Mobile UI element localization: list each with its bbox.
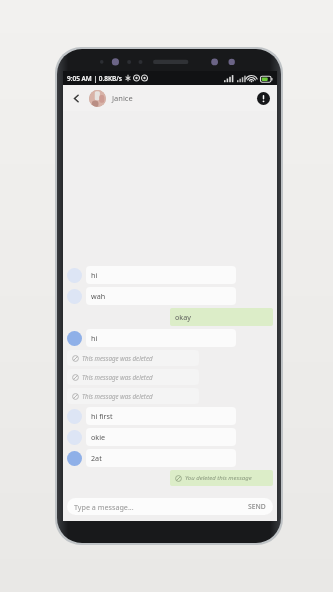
staticText: This message was deleted [82, 392, 153, 400]
button[interactable]: This message was deleted [67, 369, 273, 385]
staticText: okay [175, 312, 191, 322]
staticText: 2at [91, 453, 102, 463]
button[interactable]: Type a message... [67, 498, 273, 515]
staticText: Janice [112, 93, 133, 103]
staticText: 9:05 AM | 0.8KB/s [67, 74, 123, 83]
staticText: Type a message... [74, 502, 134, 512]
button[interactable]: hi [67, 266, 273, 284]
button[interactable]: 2at [67, 449, 273, 467]
button[interactable]: Back [68, 90, 84, 106]
button[interactable]: okay [67, 308, 273, 326]
button[interactable]: This message was deleted [67, 388, 273, 404]
staticText: You deleted this message [185, 474, 252, 482]
button[interactable]: okie [67, 428, 273, 446]
staticText: This message was deleted [82, 373, 153, 381]
button[interactable]: This message was deleted [67, 350, 273, 366]
button[interactable]: wah [67, 287, 273, 305]
staticText: hi [91, 270, 98, 280]
button[interactable]: Report [254, 89, 272, 107]
staticText: hi [91, 333, 98, 343]
staticText: wah [91, 291, 106, 301]
staticText: hi first [91, 411, 113, 421]
button[interactable]: hi first [67, 407, 273, 425]
staticText: This message was deleted [82, 354, 153, 362]
button[interactable]: You deleted this message [67, 470, 273, 486]
staticText: okie [91, 432, 106, 442]
staticText: SEND [248, 502, 266, 511]
button[interactable]: hi [67, 329, 273, 347]
